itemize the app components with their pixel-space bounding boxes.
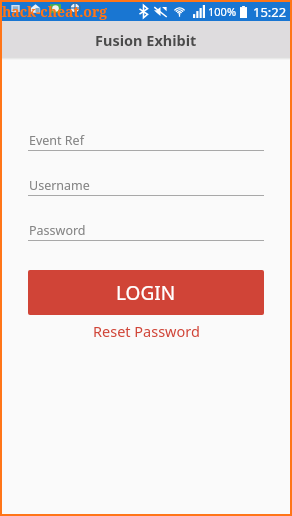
staticText: Fusion Exhibit [95,30,197,50]
staticText: 15:22 [253,3,287,21]
button[interactable]: Event Ref [28,134,264,179]
staticText: LOGIN [116,280,176,306]
button[interactable]: LOGIN [28,270,264,315]
button[interactable]: Password [28,224,264,269]
button[interactable]: Reset Password [85,319,208,343]
staticText: hack-cheat.org [2,2,108,21]
staticText: Reset Password [93,321,200,341]
button[interactable]: Username [28,179,264,224]
staticText: Event Ref [29,132,84,149]
staticText: 100% [208,4,237,19]
staticText: Username [29,177,90,194]
staticText: Password [29,222,86,239]
